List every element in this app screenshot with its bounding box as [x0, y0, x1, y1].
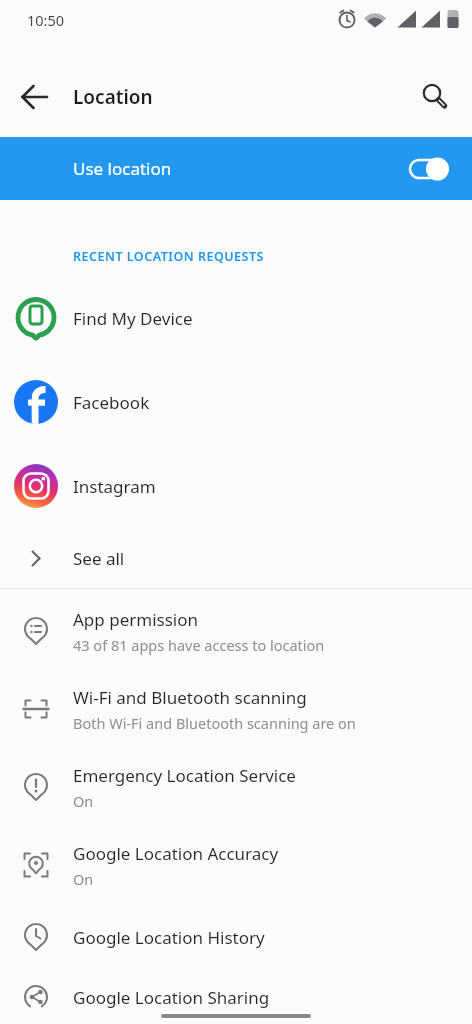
staticText: Google Location Sharing	[73, 986, 270, 1009]
staticText: See all	[73, 547, 125, 570]
staticText: Google Location History	[73, 926, 265, 949]
staticText: Location	[73, 84, 153, 110]
staticText: Emergency Location Service	[73, 764, 296, 787]
button[interactable]: Find My Device	[0, 276, 472, 360]
button[interactable]: Wi-Fi and Bluetooth scanning	[0, 670, 472, 748]
staticText: Wi-Fi and Bluetooth scanning	[73, 686, 307, 709]
button[interactable]: Google Location Sharing	[0, 970, 472, 1024]
staticText: Use location	[73, 157, 172, 180]
staticText: Instagram	[73, 475, 156, 498]
button[interactable]	[11, 73, 59, 121]
staticText: Find My Device	[73, 307, 193, 330]
button[interactable]: Google Location Accuracy	[0, 826, 472, 904]
staticText: App permission	[73, 608, 199, 631]
staticText: Facebook	[73, 391, 150, 414]
button[interactable]: Google Location History	[0, 904, 472, 970]
button[interactable]: Emergency Location Service	[0, 748, 472, 826]
staticText: RECENT LOCATION REQUESTS	[73, 248, 264, 265]
button[interactable]: App permission	[0, 592, 472, 670]
button[interactable]: Facebook	[0, 360, 472, 444]
staticText: Google Location Accuracy	[73, 842, 279, 865]
staticText: On	[73, 869, 94, 889]
staticText: On	[73, 791, 94, 811]
staticText: 43 of 81 apps have access to location	[73, 635, 325, 655]
button[interactable]: Use location	[0, 137, 472, 200]
staticText: Both Wi-Fi and Bluetooth scanning are on	[73, 713, 356, 733]
button[interactable]: See all	[0, 528, 472, 588]
button[interactable]: Instagram	[0, 444, 472, 528]
button[interactable]	[411, 73, 459, 121]
staticText: 10:50	[27, 10, 65, 30]
